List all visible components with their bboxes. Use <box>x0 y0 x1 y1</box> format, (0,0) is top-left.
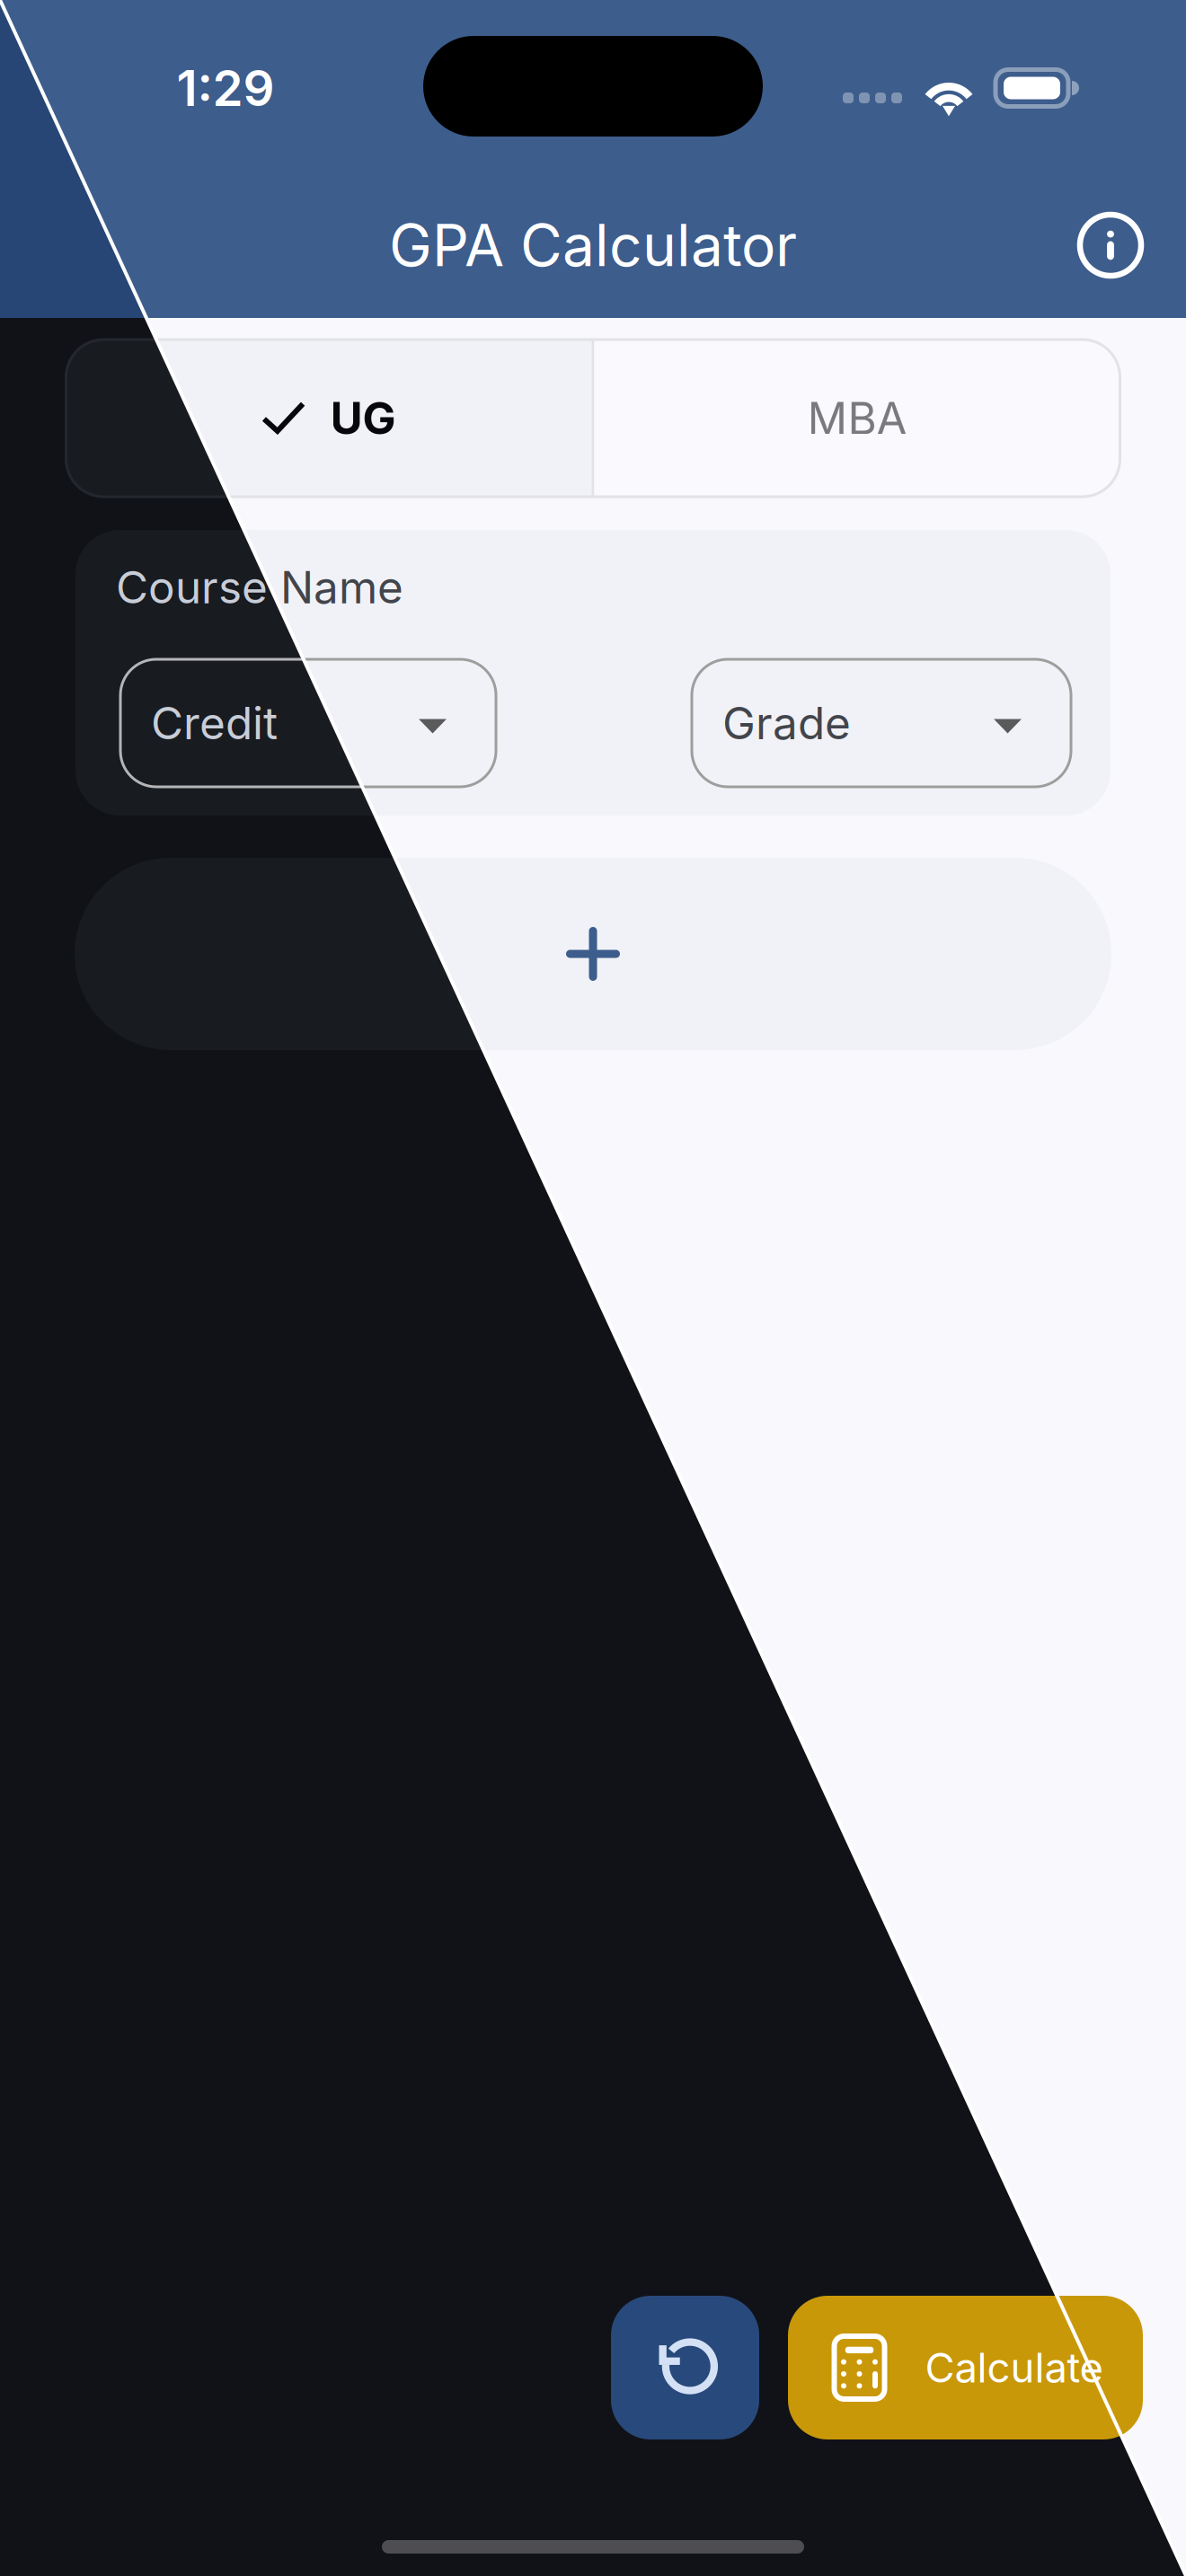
staticText: Credit <box>151 696 278 750</box>
staticText: MBA <box>807 391 907 445</box>
button[interactable]: Credit <box>120 659 496 787</box>
button[interactable]: Info <box>1057 191 1164 299</box>
button[interactable]: Grade <box>692 659 1071 787</box>
staticText: 1:29 <box>177 58 274 118</box>
staticText: Calculate <box>925 2343 1103 2392</box>
button[interactable]: MBA <box>594 340 1120 497</box>
button[interactable]: Reset <box>611 2296 759 2439</box>
staticText: Course Name <box>116 560 403 614</box>
staticText: GPA Calculator <box>389 210 797 280</box>
staticText: UG <box>330 391 396 445</box>
button[interactable]: Calculate <box>788 2296 1143 2439</box>
button[interactable]: UG <box>66 340 592 497</box>
staticText: Grade <box>722 696 851 750</box>
button[interactable]: Add course <box>75 858 1111 1050</box>
